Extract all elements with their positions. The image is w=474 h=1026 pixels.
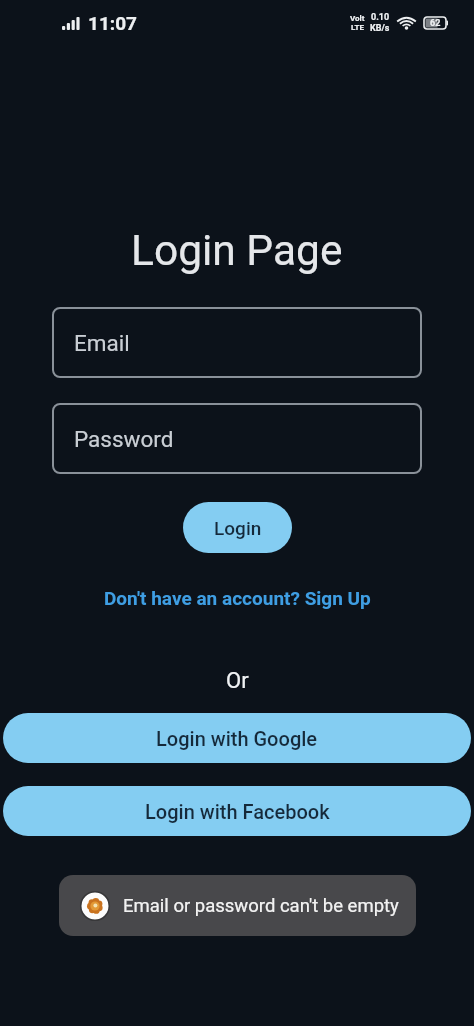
button[interactable]: Password — [52, 403, 422, 474]
staticText: Or — [226, 668, 249, 694]
staticText: Login with Google — [156, 727, 318, 750]
staticText: 62 — [430, 18, 441, 29]
button[interactable]: Login with Google — [3, 713, 471, 763]
staticText: Email — [74, 330, 130, 356]
staticText: KB/s — [370, 23, 390, 34]
staticText: Login with Facebook — [145, 800, 330, 823]
staticText: Password — [74, 426, 174, 452]
staticText: Login — [214, 517, 262, 539]
button[interactable]: Don't have an account? Sign Up — [104, 587, 371, 609]
staticText: LTE — [351, 23, 364, 32]
staticText: Volt — [350, 14, 365, 23]
button[interactable]: Email — [52, 307, 422, 378]
button[interactable]: Login with Facebook — [3, 786, 471, 836]
staticText: 11:07 — [88, 12, 137, 34]
staticText: Login Page — [131, 226, 343, 276]
button[interactable]: Login — [183, 502, 292, 553]
staticText: Email or password can't be empty — [123, 895, 399, 917]
staticText: 0.10 — [371, 12, 390, 23]
